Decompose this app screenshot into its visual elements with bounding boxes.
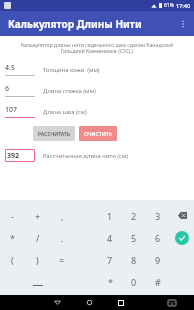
button[interactable]: ОЧИСТИТЬ <box>79 126 117 141</box>
staticText: - <box>11 210 14 222</box>
button[interactable]: + <box>25 204 50 227</box>
staticText: 4 <box>107 232 113 244</box>
button[interactable]: Recent apps <box>105 295 137 310</box>
staticText: * <box>108 276 113 288</box>
staticText: 5 <box>131 232 137 244</box>
button[interactable]: Backspace <box>170 204 194 227</box>
staticText: 7 <box>107 254 113 266</box>
button[interactable]: Home <box>73 295 105 310</box>
button[interactable]: 8 <box>122 249 146 271</box>
staticText: . <box>61 232 64 244</box>
staticText: ( <box>11 254 14 266</box>
staticText: , <box>61 210 64 222</box>
staticText: 61% <box>164 2 174 9</box>
button[interactable]: 9 <box>146 249 170 271</box>
button[interactable]: ( <box>0 249 25 271</box>
button[interactable]: 5 <box>122 227 146 249</box>
button[interactable]: Space <box>25 271 50 293</box>
button[interactable]: Enter <box>170 227 194 249</box>
button[interactable]: * <box>0 227 25 249</box>
button[interactable]: - <box>0 204 25 227</box>
staticText: 3 <box>155 210 161 222</box>
staticText: ) <box>36 254 39 266</box>
staticText: 0 <box>131 276 137 288</box>
button[interactable]: * <box>98 271 122 293</box>
button[interactable]: Switch keyboard <box>156 295 188 310</box>
button[interactable]: Back <box>41 295 73 310</box>
staticText: 1 <box>107 210 113 222</box>
button[interactable]: . <box>50 227 74 249</box>
staticText: 107 <box>5 105 18 115</box>
staticText: 4.5 <box>5 63 15 73</box>
button[interactable]: 0 <box>122 271 146 293</box>
button[interactable]: 6 <box>5 84 35 97</box>
staticText: = <box>59 254 65 266</box>
staticText: / <box>36 232 40 244</box>
button[interactable]: 2 <box>122 204 146 227</box>
button[interactable]: = <box>50 249 74 271</box>
staticText: # <box>155 276 161 288</box>
button[interactable]: 4 <box>98 227 122 249</box>
button[interactable]: # <box>146 271 170 293</box>
button[interactable]: 1 <box>98 204 122 227</box>
button[interactable]: / <box>25 227 50 249</box>
button[interactable]: 7 <box>98 249 122 271</box>
staticText: 8 <box>131 254 137 266</box>
staticText: ОЧИСТИТЬ <box>84 130 112 137</box>
staticText: 2 <box>131 210 137 222</box>
button[interactable]: 107 <box>5 105 35 118</box>
button[interactable]: 6 <box>146 227 170 249</box>
staticText: 392 <box>7 151 20 161</box>
staticText: Толщина кожи (мм) <box>43 66 100 74</box>
staticText: Длина шва (см) <box>43 108 87 116</box>
staticText: + <box>35 210 41 222</box>
staticText: РАССЧИТАТЬ <box>38 130 70 137</box>
button[interactable]: 4.5 <box>5 63 35 76</box>
button[interactable]: More options <box>172 13 194 35</box>
button[interactable]: 3 <box>146 204 170 227</box>
staticText: Калькулятор Длины Нити <box>8 17 142 31</box>
staticText: 6 <box>155 232 161 244</box>
staticText: Рассчитанная длина нити (см) <box>43 152 129 160</box>
staticText: 17:40 <box>176 2 191 9</box>
staticText: 9 <box>155 254 161 266</box>
staticText: Калькулятор длины нити седельного шва сд… <box>13 41 181 55</box>
staticText: * <box>10 232 15 244</box>
staticText: Длина стежка (мм) <box>43 87 96 95</box>
staticText: 6 <box>5 84 10 94</box>
button[interactable]: 392 <box>5 149 35 162</box>
button[interactable]: , <box>50 204 74 227</box>
button[interactable]: РАССЧИТАТЬ <box>33 126 75 141</box>
button[interactable]: ) <box>25 249 50 271</box>
